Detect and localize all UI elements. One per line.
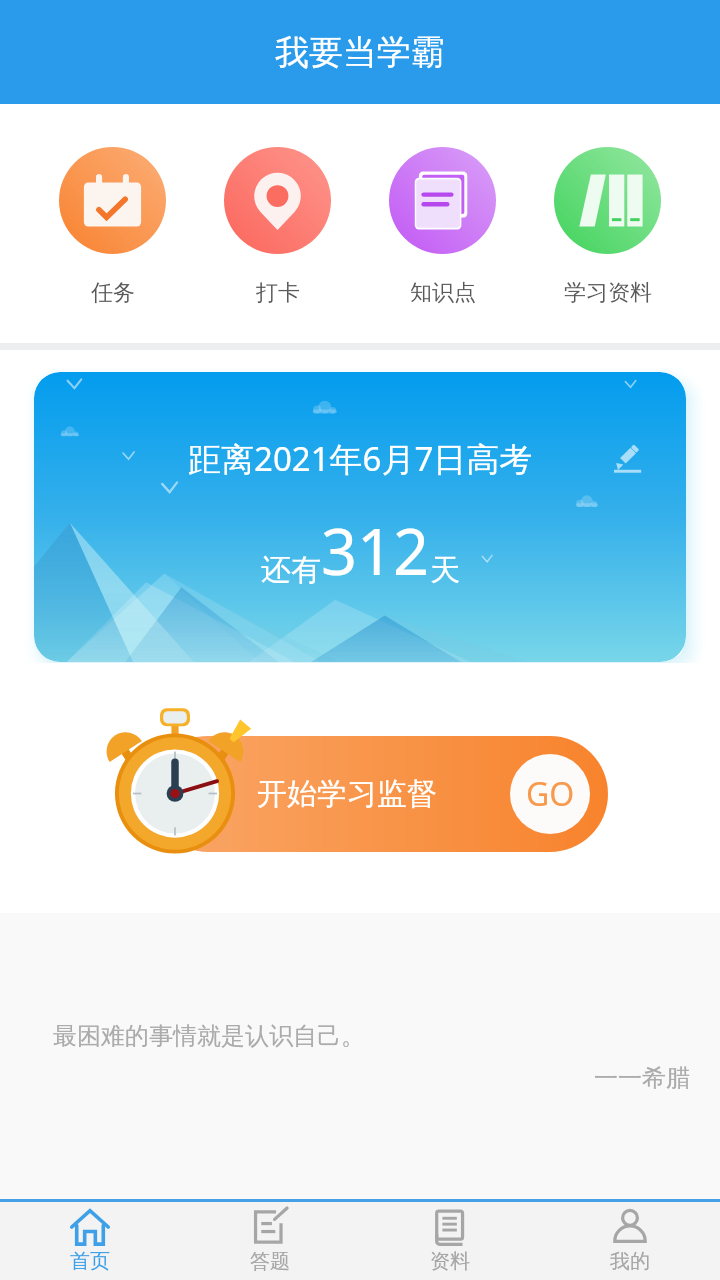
staticText: 312	[321, 508, 430, 594]
button[interactable]: 知识点	[360, 147, 525, 307]
button[interactable]: 学习资料	[525, 147, 690, 307]
other: 我的	[611, 1208, 649, 1246]
button[interactable]: 答题	[180, 1202, 360, 1280]
staticText: 我要当学霸	[275, 31, 445, 74]
staticText: 距离2021年6月7日高考	[188, 436, 533, 481]
staticText: 资料	[430, 1249, 470, 1274]
staticText: 我的	[610, 1249, 650, 1274]
button[interactable]: 开始学习监督	[150, 736, 608, 852]
staticText: 答题	[250, 1249, 290, 1274]
staticText: 打卡	[256, 279, 300, 307]
button[interactable]: 距离2021年6月7日高考	[34, 372, 686, 662]
other: 首页	[71, 1208, 109, 1246]
staticText: GO	[526, 772, 575, 816]
staticText: 首页	[70, 1249, 110, 1274]
staticText: 学习资料	[564, 279, 652, 307]
button[interactable]: 打卡	[195, 147, 360, 307]
button[interactable]: 首页	[0, 1202, 180, 1280]
staticText: 天	[430, 551, 460, 589]
button[interactable]: 任务	[30, 147, 195, 307]
staticText: 任务	[91, 279, 135, 307]
button[interactable]: 资料	[360, 1202, 540, 1280]
staticText: 一一希腊	[0, 1063, 690, 1093]
other: 答题	[251, 1208, 289, 1246]
staticText: 知识点	[410, 279, 476, 307]
staticText: 最困难的事情就是认识自己。	[53, 1021, 365, 1051]
staticText: 还有	[261, 551, 321, 589]
other: 资料	[431, 1208, 469, 1246]
button[interactable]: 编辑	[614, 445, 642, 473]
staticText: 开始学习监督	[257, 775, 437, 813]
button[interactable]: 我的	[540, 1202, 720, 1280]
